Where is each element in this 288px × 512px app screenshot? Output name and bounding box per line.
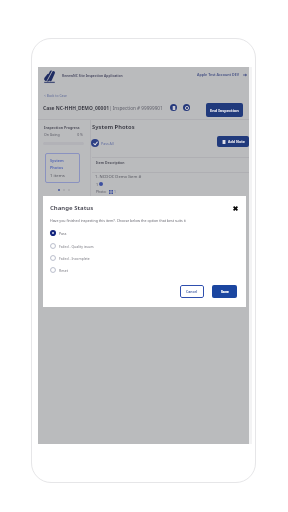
button[interactable]: Assignments <box>183 104 190 111</box>
staticText: Apple Test Account DEV <box>197 72 240 77</box>
staticText: Case NC-HHH_DEMO_00001 <box>43 105 110 112</box>
button[interactable]: Item info <box>99 182 103 186</box>
button[interactable]: System <box>45 153 80 183</box>
button[interactable]: Failed - Incomplete <box>50 253 160 263</box>
button[interactable]: Pass All <box>91 139 114 147</box>
staticText: Inspection Progress <box>44 125 80 130</box>
button[interactable]: Pass <box>50 228 160 238</box>
staticText: Add Note <box>228 139 245 144</box>
staticText: Failed - Quality issues <box>59 244 94 249</box>
button[interactable]: Close <box>228 201 242 215</box>
staticText: Change Status <box>50 204 94 212</box>
staticText: Photo: <box>96 189 107 194</box>
button[interactable]: < Back to Case <box>44 91 70 99</box>
staticText: 1 items <box>50 172 65 178</box>
staticText: Item Description <box>96 160 125 165</box>
staticText: 1 <box>96 182 99 187</box>
staticText: Reset <box>59 268 68 273</box>
button[interactable]: Documents <box>170 104 177 111</box>
button[interactable]: Apple Test Account DEV <box>197 70 247 79</box>
staticText: Have you finished inspecting this item?.… <box>50 218 186 223</box>
button[interactable]: Failed - Quality issues <box>50 241 160 251</box>
button[interactable]: End Inspection <box>206 103 243 117</box>
staticText: Pass All <box>101 141 114 146</box>
staticText: System <box>50 158 64 163</box>
staticText: 1 <box>114 189 116 194</box>
staticText: Save <box>221 289 229 294</box>
button[interactable]: Save <box>212 285 237 298</box>
button[interactable]: Cancel <box>180 285 204 298</box>
button[interactable]: Reset <box>50 265 160 275</box>
staticText: On Going <box>44 132 60 137</box>
staticText: Failed - Incomplete <box>59 256 90 261</box>
staticText: 1. NCDOC Demo Item # <box>95 174 142 180</box>
staticText: Photos <box>50 165 64 170</box>
staticText: End Inspection <box>210 108 239 113</box>
staticText: Cancel <box>186 289 198 294</box>
staticText: < Back to Case <box>44 93 67 98</box>
staticText: RenewNC Site Inspection Application <box>62 73 123 77</box>
staticText: System Photos <box>92 123 135 131</box>
button[interactable]: Add Note <box>217 136 249 147</box>
staticText: Pass <box>59 231 67 236</box>
staticText: 0 % <box>72 132 83 137</box>
staticText: | Inspection # 99999901 <box>109 105 163 111</box>
